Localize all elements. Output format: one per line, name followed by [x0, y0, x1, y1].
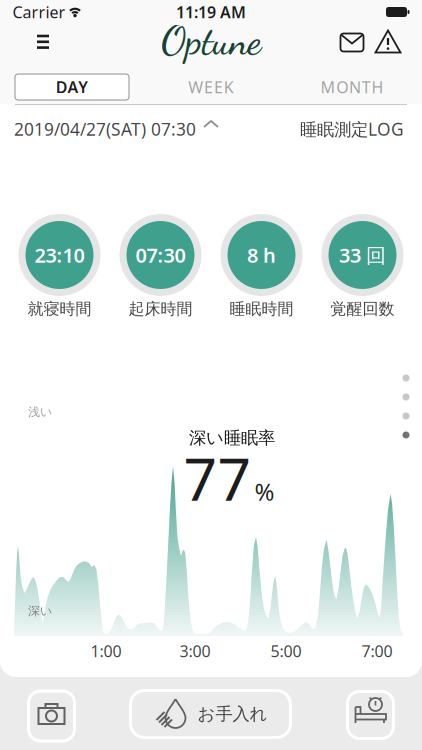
- button[interactable]: Alerts: [370, 25, 406, 59]
- staticText: 2019/04/27(SAT) 07:30: [14, 117, 196, 140]
- button[interactable]: MONTH: [295, 74, 409, 100]
- staticText: 3:00: [179, 640, 210, 662]
- button[interactable]: 睡眠測定LOG: [300, 117, 404, 140]
- staticText: 睡眠測定LOG: [300, 117, 404, 140]
- staticText: 11:19 AM: [176, 1, 246, 23]
- button[interactable]: Collapse: [202, 119, 220, 129]
- button[interactable]: Camera: [28, 691, 74, 741]
- button[interactable]: Sleep alarm: [347, 691, 393, 738]
- staticText: 77: [183, 439, 251, 517]
- staticText: 23:10: [34, 242, 84, 268]
- staticText: 深い: [28, 604, 52, 618]
- staticText: Carrier: [12, 1, 65, 23]
- staticText: お手入れ: [197, 703, 267, 725]
- staticText: 1:00: [90, 640, 121, 662]
- staticText: MONTH: [320, 76, 384, 98]
- staticText: 33 回: [339, 242, 386, 268]
- staticText: Optune: [161, 18, 261, 64]
- staticText: %: [254, 475, 274, 507]
- button[interactable]: DAY: [15, 74, 129, 100]
- staticText: 8 h: [247, 242, 276, 268]
- staticText: 起床時間: [128, 299, 192, 319]
- staticText: 5:00: [270, 640, 301, 662]
- staticText: 浅い: [28, 405, 52, 419]
- staticText: 深い睡眠率: [189, 427, 275, 449]
- staticText: 覚醒回数: [330, 299, 394, 319]
- staticText: 7:00: [361, 640, 392, 662]
- button[interactable]: Menu: [23, 24, 63, 60]
- staticText: 就寝時間: [27, 299, 91, 319]
- button[interactable]: お手入れ: [130, 690, 290, 737]
- button[interactable]: WEEK: [154, 74, 268, 100]
- staticText: DAY: [56, 76, 88, 98]
- button[interactable]: Messages: [335, 25, 369, 59]
- staticText: 07:30: [135, 242, 185, 268]
- staticText: WEEK: [188, 76, 234, 98]
- staticText: 睡眠時間: [229, 299, 293, 319]
